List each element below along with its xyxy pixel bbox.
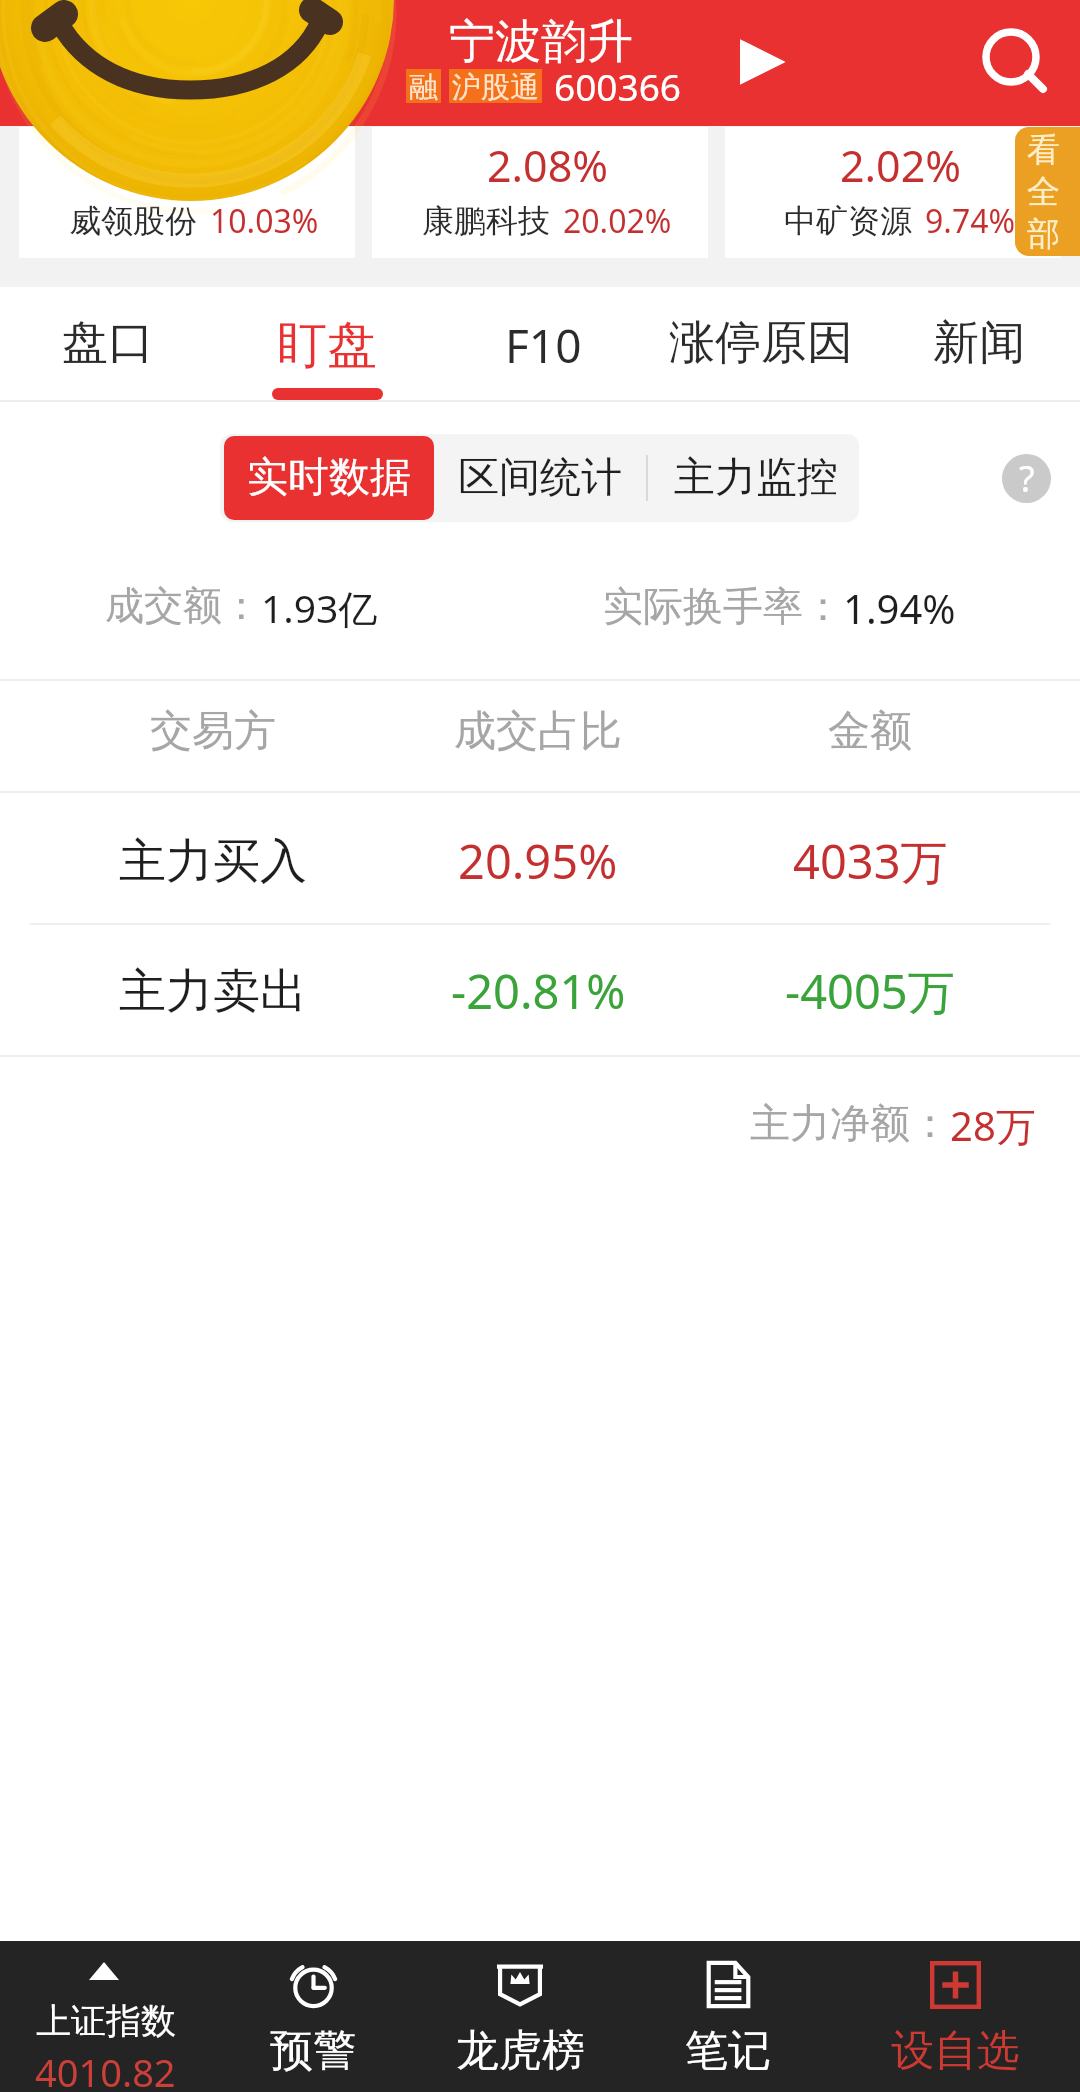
staticText: 600366 [554,61,681,111]
button[interactable]: 设自选 [851,1941,1059,2092]
button[interactable]: 上证指数 [0,1941,215,2092]
button[interactable]: 新闻 [874,287,1080,400]
button[interactable]: 龙虎榜 [416,1941,624,2092]
staticText: 全 [1027,171,1060,213]
staticText: 金额 [828,705,912,758]
staticText: 设自选 [891,2024,1020,2078]
staticText: 主力监控 [674,452,838,504]
staticText: -4005万 [785,959,955,1023]
staticText: 20.02% [563,199,672,243]
button[interactable]: 涨停原因 [656,287,866,400]
button[interactable]: Help [1002,454,1051,503]
staticText: 主力净额： [750,1098,950,1148]
button[interactable]: 区间统计 [434,434,646,522]
staticText: 威领股份 [69,201,197,241]
button[interactable]: 看 [1015,127,1080,256]
staticText: 看 [1027,129,1060,171]
staticText: 成交额： [105,581,261,630]
staticText: 20.95% [458,829,618,893]
staticText: 成交占比 [454,705,622,758]
button[interactable]: F10 [438,287,648,400]
staticText: 盯盘 [277,314,377,377]
staticText: 康鹏科技 [422,201,550,241]
staticText: ? [1019,454,1035,503]
button[interactable]: 2.08% [372,127,708,258]
staticText: 融 [409,69,438,103]
staticText: 盘口 [62,314,154,372]
button[interactable]: 预警 [209,1941,417,2092]
button[interactable]: Play [723,24,799,100]
staticText: 2.02% [840,136,962,195]
staticText: 28万 [950,1098,1036,1153]
button[interactable]: 盘口 [3,287,213,400]
staticText: 笔记 [685,2024,771,2078]
staticText: 4010.82 [35,2046,176,2092]
staticText: 主力买入 [119,832,307,891]
staticText: 预警 [270,2024,356,2078]
staticText: 交易方 [150,705,276,758]
button[interactable]: 主力监控 [648,434,859,522]
staticText: 10.03% [210,199,319,243]
staticText: 沪股通 [452,69,539,103]
staticText: -20.81% [451,959,626,1023]
staticText: 新闻 [933,314,1025,372]
staticText: 宁波韵升 [449,13,633,71]
staticText: 实时数据 [247,452,411,504]
staticText: 区间统计 [458,452,622,504]
staticText: 涨停原因 [669,314,853,372]
staticText: 上证指数 [36,1999,176,2043]
staticText: F10 [505,314,582,377]
staticText: 部 [1027,213,1060,255]
staticText: 4033万 [793,829,948,893]
button[interactable]: 笔记 [624,1941,832,2092]
staticText: 实际换手率： [603,581,843,631]
staticText: 中矿资源 [784,201,912,241]
button[interactable]: 威领股份 [19,127,355,258]
staticText: 1.93亿 [261,581,378,634]
staticText: 主力卖出 [119,962,307,1021]
button[interactable]: 盯盘 [222,287,432,400]
staticText: 2.08% [487,136,609,195]
button[interactable]: 实时数据 [224,436,434,520]
staticText: 龙虎榜 [456,2024,585,2078]
button[interactable]: 2.02% [725,127,1061,258]
button[interactable]: Search [952,0,1052,98]
staticText: 9.74% [925,199,1016,243]
staticText: 1.94% [843,581,956,635]
